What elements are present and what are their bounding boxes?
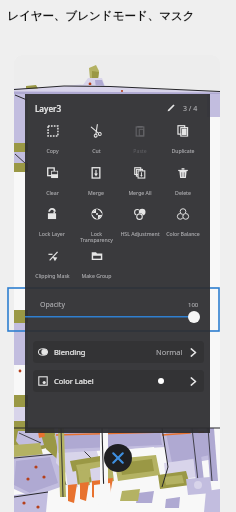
- button[interactable]: Make Group: [74, 245, 118, 287]
- staticText: HSL Adjustment: [120, 230, 160, 237]
- button[interactable]: Close: [104, 444, 132, 472]
- staticText: Opacity: [40, 300, 65, 310]
- staticText: Merge All: [128, 189, 152, 196]
- button[interactable]: Rename layer: [164, 101, 178, 115]
- staticText: Delete: [175, 189, 191, 196]
- staticText: Copy: [46, 147, 59, 154]
- staticText: Layer3: [35, 103, 62, 114]
- staticText: 3 / 4: [183, 104, 198, 114]
- staticText: 100: [188, 301, 199, 309]
- staticText: レイヤー、ブレンドモード、マスク: [7, 9, 195, 23]
- button[interactable]: Duplicate: [161, 120, 205, 162]
- staticText: Merge: [88, 189, 104, 196]
- button[interactable]: Blending: [33, 341, 204, 363]
- button[interactable]: Merge: [74, 162, 118, 204]
- button[interactable]: Delete: [161, 162, 205, 204]
- button[interactable]: Copy: [30, 120, 74, 162]
- staticText: Color Label: [54, 376, 94, 386]
- staticText: Lock Layer: [39, 230, 65, 237]
- staticText: Clear: [46, 189, 59, 196]
- button[interactable]: Color Balance: [161, 203, 205, 245]
- button[interactable]: Lock Layer: [30, 203, 74, 245]
- button[interactable]: Color Label: [33, 370, 204, 392]
- button[interactable]: Merge All: [118, 162, 162, 204]
- staticText: Paste: [133, 147, 147, 154]
- staticText: Blending: [54, 347, 86, 357]
- staticText: Duplicate: [171, 147, 195, 154]
- button[interactable]: Paste: [118, 120, 162, 162]
- staticText: Clipping Mask: [35, 272, 70, 279]
- staticText: Normal: [156, 347, 183, 357]
- button[interactable]: Cut: [74, 120, 118, 162]
- staticText: Make Group: [81, 272, 112, 279]
- button[interactable]: Clipping Mask: [30, 245, 74, 287]
- staticText: Cut: [92, 147, 101, 154]
- button[interactable]: HSL Adjustment: [118, 203, 162, 245]
- button[interactable]: Clear: [30, 162, 74, 204]
- staticText: Lock Transparency: [80, 230, 113, 243]
- staticText: Color Balance: [166, 230, 200, 237]
- button[interactable]: Opacity slider: [188, 311, 200, 323]
- button[interactable]: Lock Transparency: [74, 203, 118, 245]
